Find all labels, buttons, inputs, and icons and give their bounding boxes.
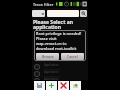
- staticText: application: [33, 24, 61, 31]
- button[interactable]: Add: [46, 81, 57, 90]
- staticText: com.pkg.name: [44, 81, 61, 84]
- button[interactable]: Application: [32, 63, 88, 70]
- staticText: com.pkg.name: [44, 67, 61, 70]
- button[interactable]: Refresh: [70, 81, 81, 90]
- button[interactable]: Filter type: [32, 10, 45, 17]
- button[interactable]: Search field: [47, 10, 79, 17]
- staticText: Please visit: [36, 36, 57, 41]
- button[interactable]: Application: [32, 70, 88, 77]
- staticText: Trace filter: [33, 2, 54, 7]
- staticText: Cancel: [67, 54, 78, 59]
- staticText: Please Select an: [33, 19, 73, 26]
- button[interactable]: Save: [34, 81, 45, 90]
- staticText: Application: [44, 77, 59, 81]
- button[interactable]: Browse: [36, 53, 59, 60]
- staticText: Root privilege is needed!: [36, 31, 82, 36]
- staticText: com.pkg.name: [44, 74, 61, 77]
- staticText: download root-toolkit: [36, 46, 77, 51]
- staticText: Application: [44, 63, 59, 67]
- button[interactable]: Search: [80, 10, 87, 17]
- button[interactable]: Delete: [58, 81, 69, 90]
- staticText: Application: [44, 70, 59, 74]
- button[interactable]: Application: [32, 77, 88, 84]
- staticText: Browse: [42, 54, 54, 59]
- button[interactable]: Cancel: [61, 53, 84, 60]
- staticText: wap.vrroot.cn to: [36, 41, 67, 46]
